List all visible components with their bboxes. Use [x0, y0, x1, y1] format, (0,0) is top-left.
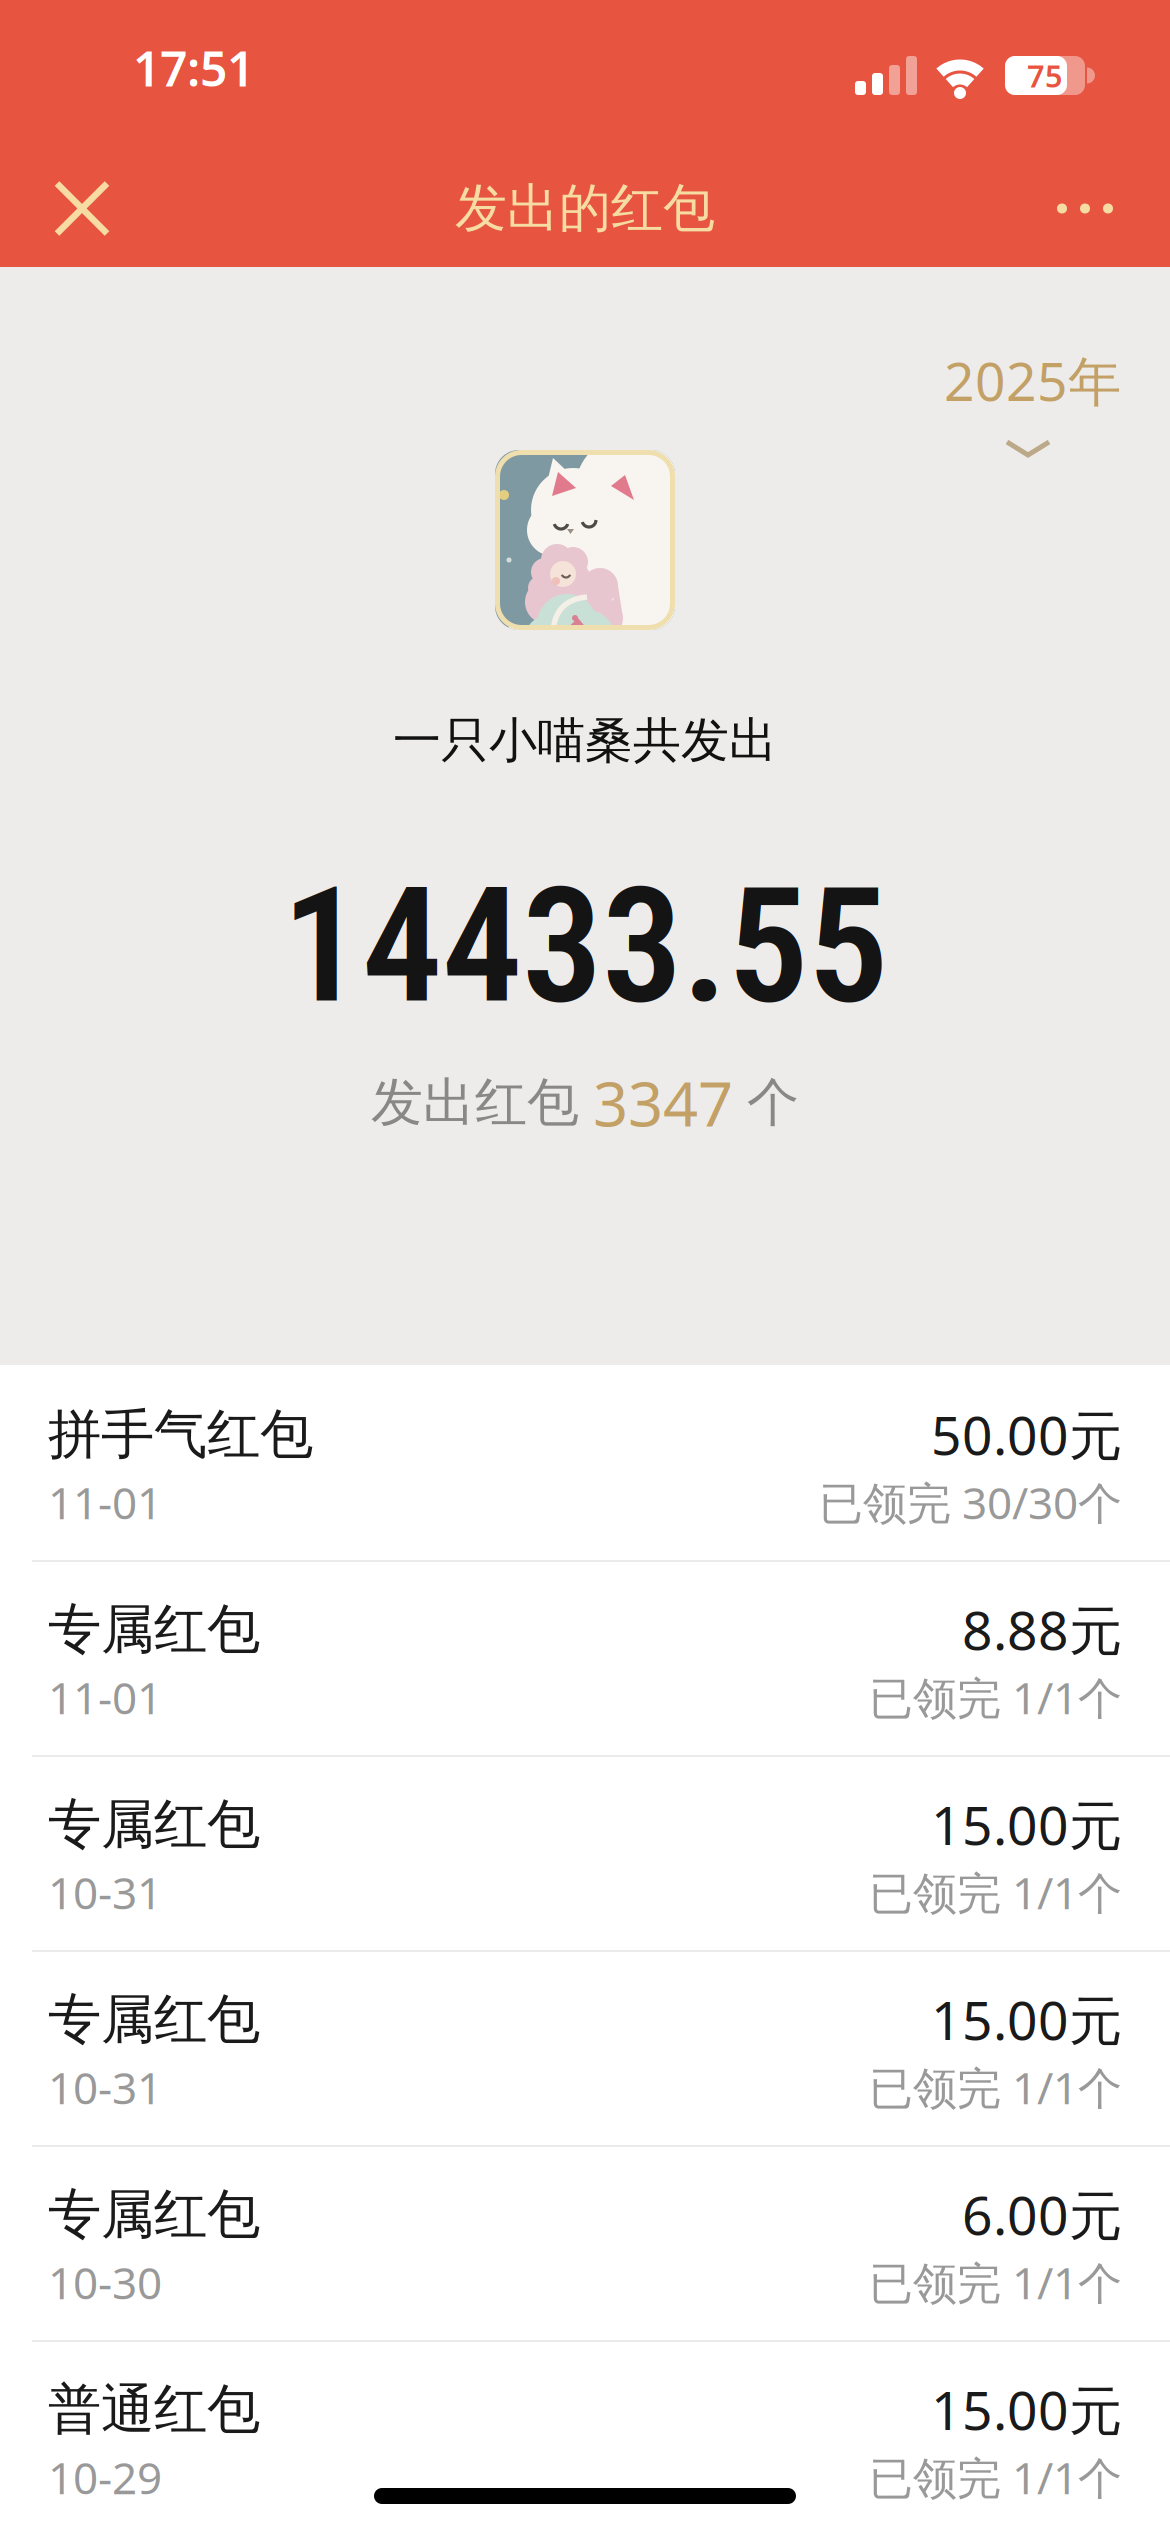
button[interactable]: Expand year picker	[1005, 440, 1051, 457]
staticText: 已领完 1/1个	[869, 1863, 1122, 1921]
staticText: 17:51	[133, 36, 254, 100]
button[interactable]: 拼手气红包	[0, 1365, 1170, 1560]
staticText: 专属红包	[48, 1987, 260, 2052]
staticText: 发出红包	[371, 1071, 579, 1135]
staticText: 2025年	[944, 345, 1121, 416]
staticText: 8.88元	[962, 1594, 1122, 1665]
staticText: 10-29	[48, 2448, 162, 2506]
staticText: 15.00元	[931, 1984, 1122, 2055]
staticText: 15.00元	[931, 1789, 1122, 1860]
staticText: 75	[1027, 55, 1063, 96]
button[interactable]: 专属红包	[0, 1755, 1170, 1950]
staticText: 10-30	[48, 2253, 162, 2311]
staticText: 6.00元	[962, 2179, 1122, 2250]
staticText: 50.00元	[931, 1399, 1122, 1470]
staticText: 已领完 1/1个	[869, 2058, 1122, 2116]
button[interactable]: 专属红包	[0, 2145, 1170, 2340]
staticText: 专属红包	[48, 1597, 260, 1662]
staticText: 10-31	[48, 1863, 162, 1921]
staticText: 11-01	[48, 1668, 162, 1726]
staticText: 已领完 1/1个	[869, 2253, 1122, 2311]
button[interactable]: More	[1057, 203, 1170, 213]
button[interactable]: 普通红包	[0, 2340, 1170, 2532]
staticText: 普通红包	[48, 2377, 260, 2442]
staticText: 一只小喵桑共发出	[393, 711, 777, 770]
staticText: 专属红包	[48, 2182, 260, 2247]
staticText: 已领完 1/1个	[869, 1668, 1122, 1726]
staticText: 10-31	[48, 2058, 162, 2116]
staticText: 14433.55	[282, 852, 888, 1039]
button[interactable]: 专属红包	[0, 1950, 1170, 2145]
staticText: 发出的红包	[455, 177, 715, 240]
button[interactable]: Select year	[944, 345, 1121, 416]
staticText: 拼手气红包	[48, 1402, 313, 1467]
staticText: 专属红包	[48, 1792, 260, 1857]
staticText: 已领完 30/30个	[819, 1473, 1122, 1531]
staticText: 15.00元	[931, 2374, 1122, 2445]
staticText: 3347	[593, 1062, 733, 1143]
staticText: 11-01	[48, 1473, 162, 1531]
staticText: 已领完 1/1个	[869, 2448, 1122, 2506]
button[interactable]: 专属红包	[0, 1560, 1170, 1755]
button[interactable]: Close	[0, 182, 108, 234]
staticText: 个	[747, 1071, 799, 1135]
